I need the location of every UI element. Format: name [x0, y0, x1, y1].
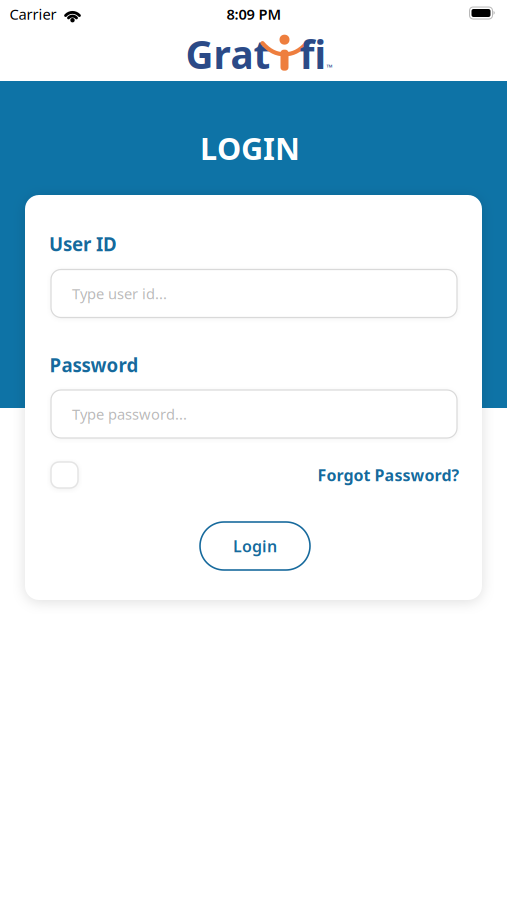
staticText: Type password...	[72, 404, 187, 424]
staticText: Carrier	[9, 4, 56, 24]
button[interactable]: Login	[200, 522, 310, 570]
staticText: Grat	[185, 28, 270, 80]
staticText: i	[314, 28, 326, 80]
staticText: User ID	[49, 232, 117, 256]
staticText: Forgot Password?	[317, 464, 459, 486]
button[interactable]: Password text field	[51, 390, 457, 438]
staticText: LOGIN	[200, 128, 300, 168]
button[interactable]: User ID text field	[51, 269, 457, 317]
button[interactable]: Remember me	[51, 462, 78, 488]
staticText: Password	[49, 353, 138, 377]
staticText: Login	[233, 535, 277, 557]
staticText: ™	[326, 62, 332, 73]
staticText: Type user id...	[72, 284, 167, 303]
staticText: 8:09 PM	[226, 4, 281, 24]
button[interactable]: Forgot Password?	[317, 464, 459, 486]
staticText: f	[299, 28, 314, 80]
